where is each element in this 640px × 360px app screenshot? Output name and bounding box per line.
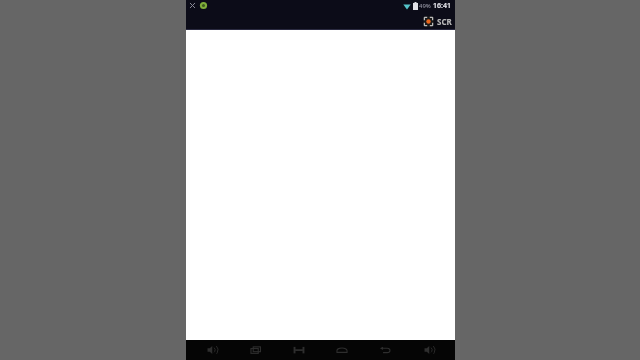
button[interactable]: Back [368,340,402,360]
button[interactable]: Volume down [195,340,229,360]
button[interactable]: Screenshot [282,340,316,360]
staticText: 16:41 [433,1,451,11]
staticText: 49% [419,2,431,10]
button[interactable]: Recent apps [239,340,273,360]
button[interactable]: Home [325,340,359,360]
staticText: SCR [437,16,452,27]
button[interactable]: SCR screen recorder [422,15,452,28]
button[interactable]: Volume up [412,340,446,360]
